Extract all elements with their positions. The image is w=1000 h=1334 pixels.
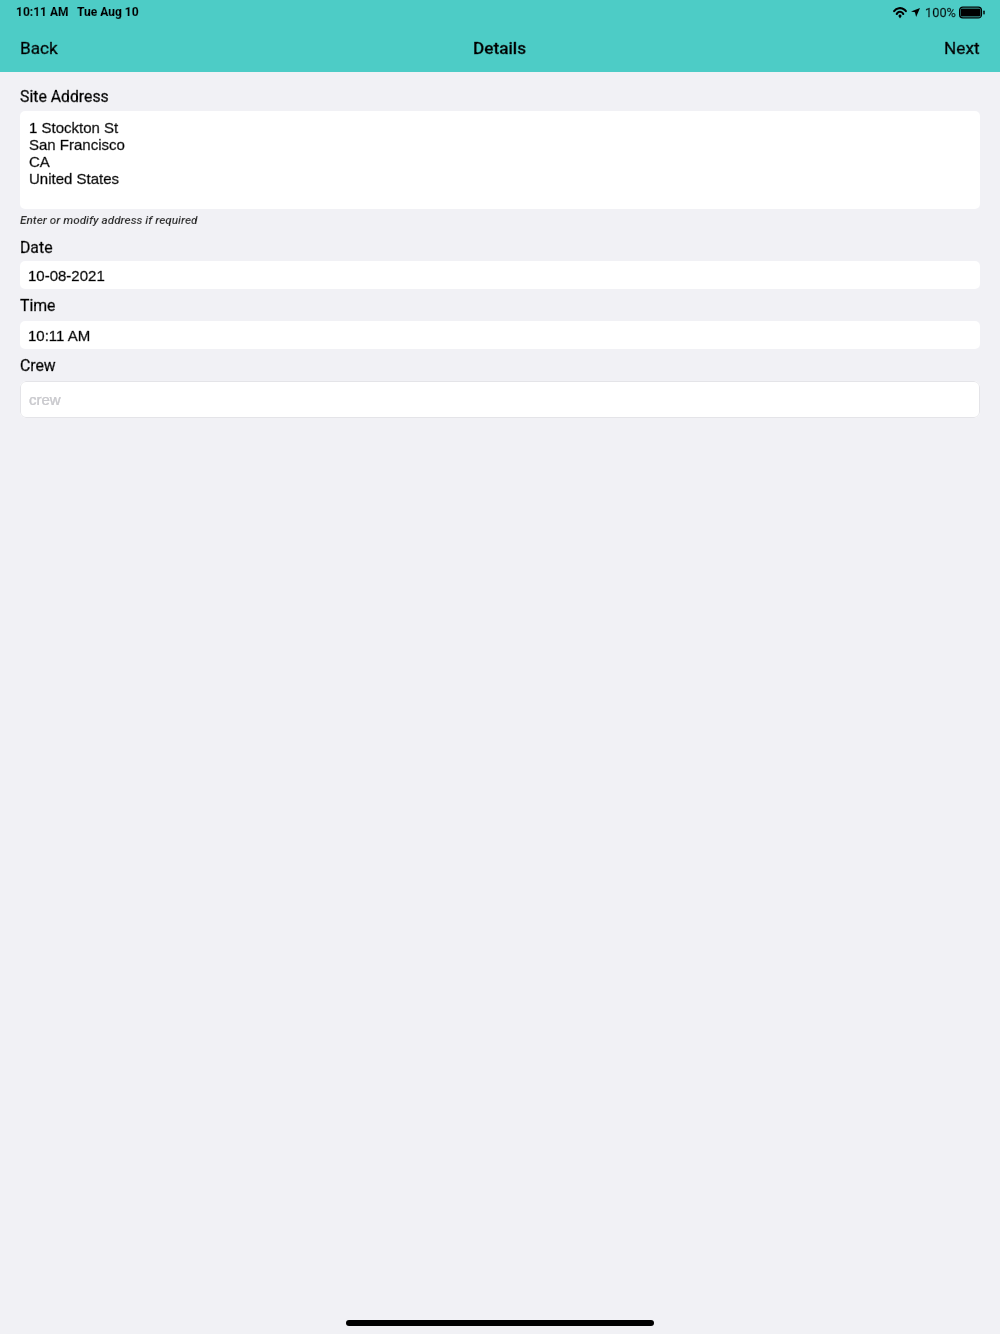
button[interactable]: 10-08-2021 xyxy=(20,261,980,289)
staticText: 10:11 AM Tue Aug 10 xyxy=(16,5,139,19)
staticText: Enter or modify address if required xyxy=(20,213,198,227)
staticText: 10:11 AM xyxy=(28,327,91,344)
staticText: Details xyxy=(473,38,527,58)
button[interactable]: Back xyxy=(8,28,70,72)
staticText: 1 Stockton St San Francisco CA United St… xyxy=(29,119,125,187)
staticText: Enter or modify address if required xyxy=(20,213,198,227)
other: Wi-Fi xyxy=(893,7,907,18)
staticText: Date xyxy=(20,238,53,257)
staticText: 10-08-2021 xyxy=(28,267,105,284)
staticText: Details xyxy=(473,38,527,58)
staticText: crew xyxy=(29,391,61,408)
button[interactable]: crew xyxy=(20,381,980,418)
staticText: Back xyxy=(20,38,58,58)
other: Battery 100 percent xyxy=(959,6,985,19)
staticText: Back xyxy=(20,38,58,58)
staticText: 10-08-2021 xyxy=(28,267,105,284)
staticText: Crew xyxy=(20,356,56,375)
button[interactable]: 10:11 AM xyxy=(20,321,980,349)
staticText: Site Address xyxy=(20,87,109,106)
staticText: Time xyxy=(20,296,56,315)
staticText: Time xyxy=(20,296,56,315)
staticText: Crew xyxy=(20,356,56,375)
staticText: 10:11 AM Tue Aug 10 xyxy=(16,5,139,19)
staticText: 1 Stockton St San Francisco CA United St… xyxy=(29,119,125,187)
button[interactable]: 1 Stockton St San Francisco CA United St… xyxy=(20,111,980,209)
staticText: crew xyxy=(29,391,61,408)
staticText: 100% xyxy=(925,5,956,20)
staticText: Date xyxy=(20,238,53,257)
button[interactable]: Next xyxy=(932,28,992,72)
staticText: 100% xyxy=(925,5,956,20)
staticText: 10:11 AM xyxy=(28,327,91,344)
staticText: Next xyxy=(944,38,980,58)
staticText: Next xyxy=(944,38,980,58)
staticText: Site Address xyxy=(20,87,109,106)
other: Location xyxy=(911,8,920,17)
